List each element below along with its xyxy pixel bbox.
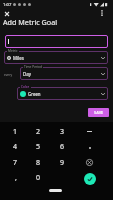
staticText: 2: [36, 127, 41, 137]
staticText: 4: [13, 142, 18, 152]
button[interactable]: [5, 35, 108, 48]
button[interactable]: 1: [4, 124, 27, 139]
staticText: Miles: [13, 55, 24, 61]
staticText: 1:07: [3, 2, 12, 8]
button[interactable]: 6: [51, 139, 74, 154]
button[interactable]: 3: [51, 124, 74, 139]
button[interactable]: 4: [4, 139, 27, 154]
button[interactable]: 2: [27, 124, 50, 139]
button[interactable]: 9: [51, 155, 74, 170]
button[interactable]: Miles: [4, 51, 108, 64]
staticText: Day: [23, 71, 31, 77]
button[interactable]: Close: [2, 9, 12, 19]
staticText: 5: [36, 142, 41, 152]
staticText: Time Period: [24, 65, 42, 69]
staticText: 7: [13, 158, 18, 168]
button[interactable]: 5: [27, 139, 50, 154]
staticText: ,: [15, 173, 17, 183]
staticText: Add Metric Goal: [3, 17, 58, 27]
button[interactable]: 0: [27, 170, 50, 185]
button[interactable]: Green: [17, 87, 108, 100]
staticText: Metric: [8, 49, 18, 53]
button[interactable]: Backspace: [78, 155, 101, 170]
button[interactable]: 7: [4, 155, 27, 170]
staticText: 3: [60, 127, 65, 137]
staticText: 1: [13, 127, 18, 137]
button[interactable]: ,: [4, 170, 27, 185]
button[interactable]: More options: [97, 8, 107, 18]
staticText: Green: [28, 91, 41, 97]
button[interactable]: Minus: [78, 124, 101, 139]
button[interactable]: Day: [20, 67, 108, 80]
button[interactable]: SAVE: [88, 108, 109, 117]
button[interactable]: Enter: [84, 173, 96, 185]
staticText: every: [4, 73, 13, 77]
button[interactable]: 8: [27, 155, 50, 170]
staticText: 8: [36, 158, 41, 168]
staticText: SAVE: [94, 110, 104, 115]
staticText: 9: [60, 158, 65, 168]
staticText: 6: [60, 142, 65, 152]
staticText: Color: [21, 85, 30, 89]
button[interactable]: Decimal point: [78, 140, 101, 155]
staticText: 0: [36, 173, 41, 183]
